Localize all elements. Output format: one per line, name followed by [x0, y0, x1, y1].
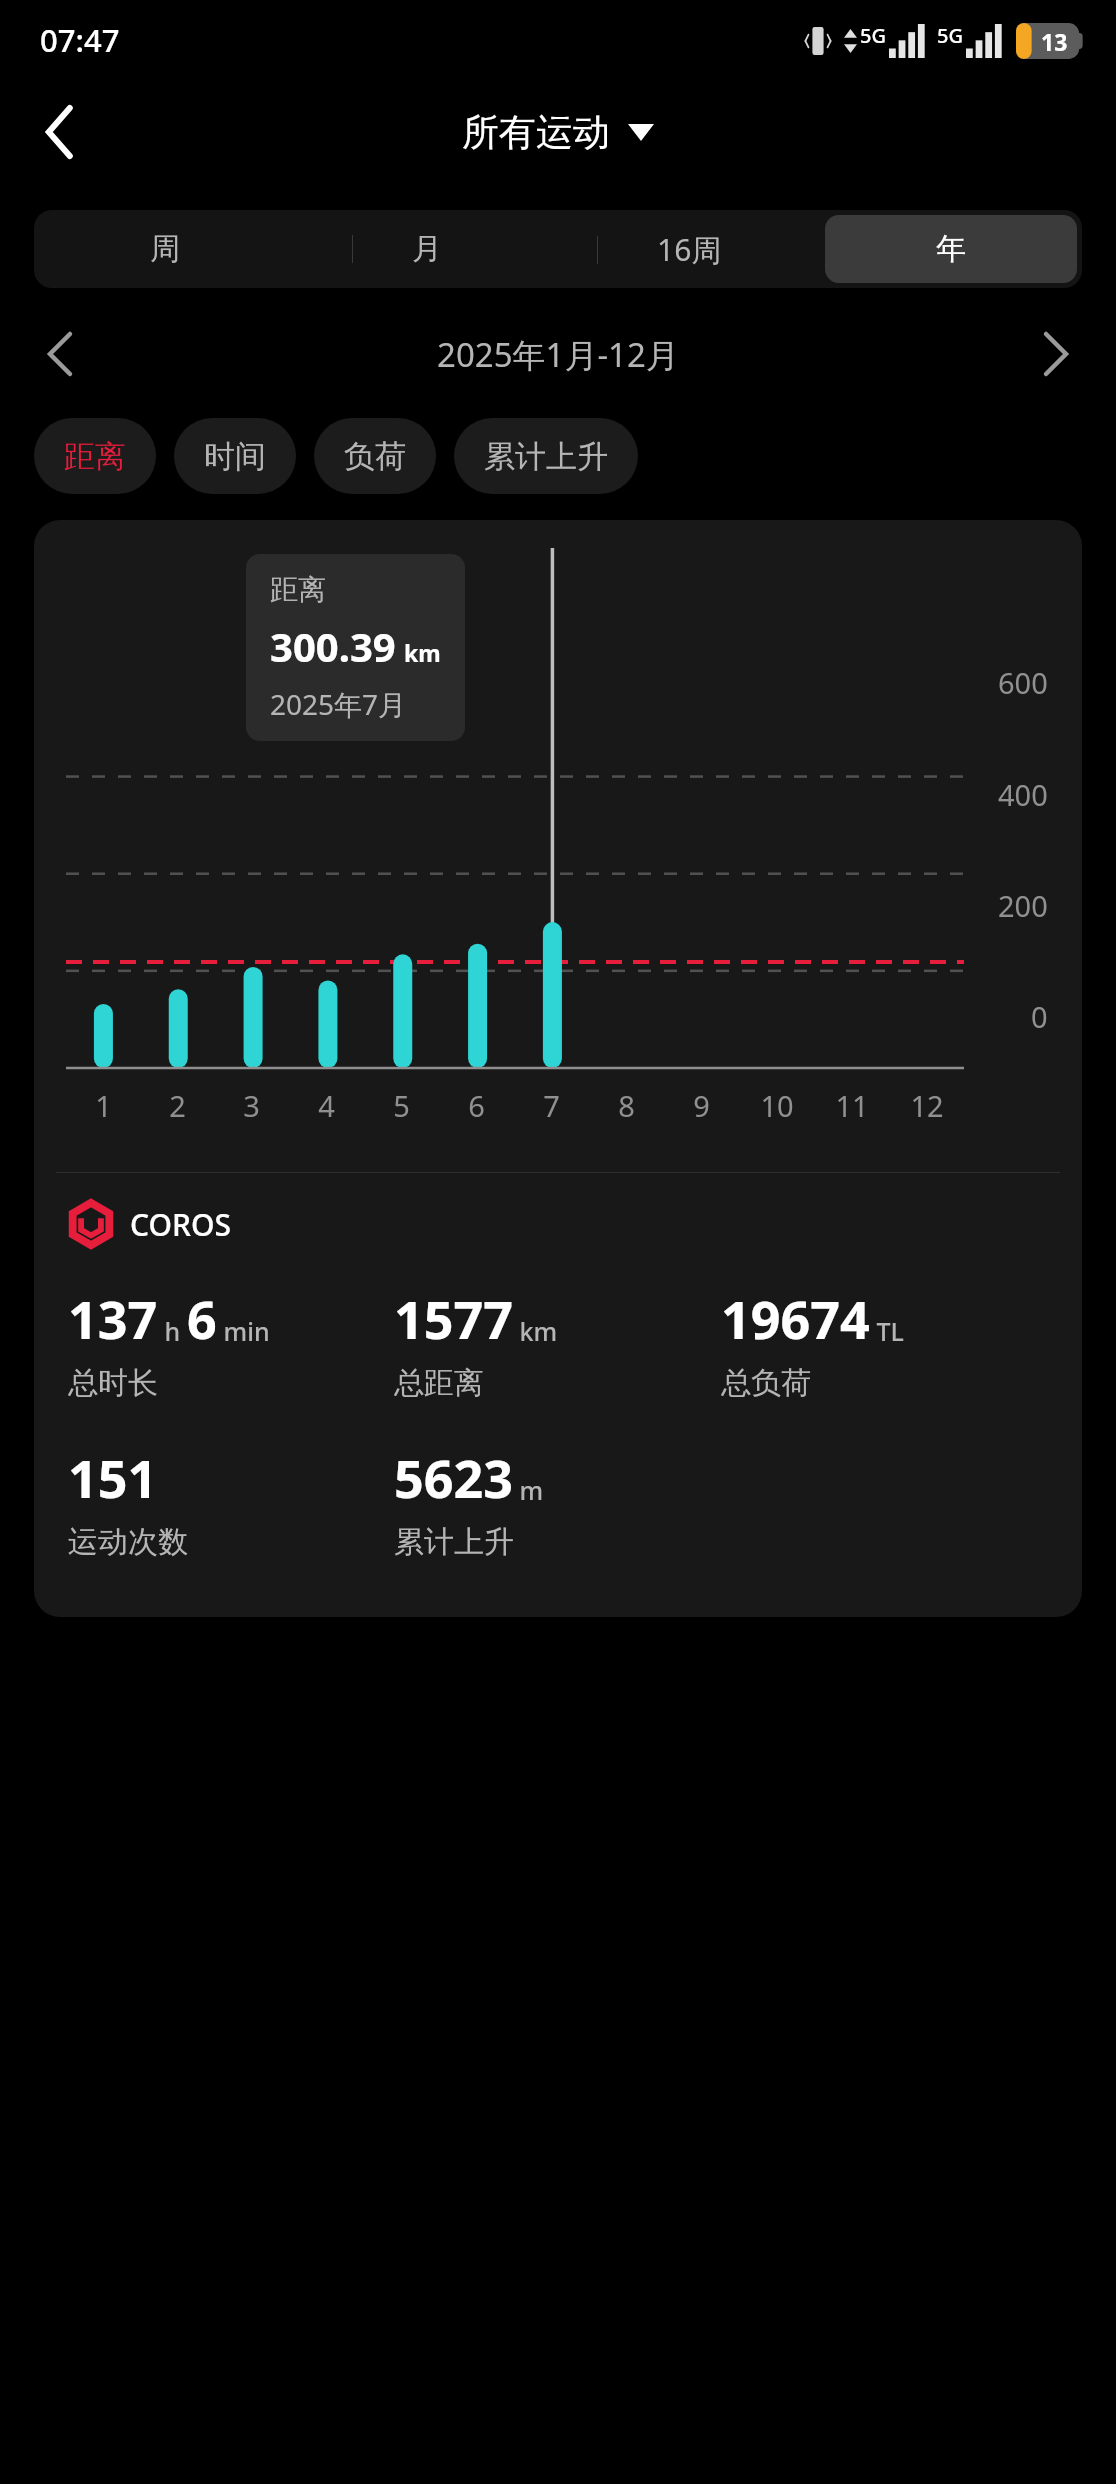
staticText: COROS — [130, 1204, 231, 1245]
staticText: 月 — [412, 230, 442, 268]
staticText: min — [217, 1314, 270, 1348]
staticText: 周 — [150, 230, 180, 268]
staticText: 2 — [169, 1086, 186, 1125]
staticText: 7 — [543, 1086, 560, 1125]
staticText: 累计上升 — [394, 1523, 514, 1561]
staticText: 时间 — [204, 437, 266, 476]
button[interactable]: 距离 — [34, 418, 156, 494]
button[interactable]: 累计上升 — [454, 418, 638, 494]
staticText: 6 — [187, 1283, 217, 1354]
staticText: 0 — [1031, 997, 1048, 1036]
staticText: 400 — [998, 775, 1048, 814]
staticText: m — [513, 1473, 544, 1507]
staticText: 5 — [393, 1086, 410, 1125]
staticText: 3 — [243, 1086, 260, 1125]
staticText: 13 — [1041, 26, 1068, 57]
staticText: 运动次数 — [68, 1523, 188, 1561]
staticText: 10 — [760, 1086, 794, 1125]
staticText: 所有运动 — [462, 109, 610, 156]
button[interactable]: 负荷 — [314, 418, 436, 494]
button[interactable]: 月 — [301, 215, 553, 283]
staticText: 600 — [998, 663, 1048, 702]
staticText: 151 — [68, 1442, 158, 1513]
staticText: 07:47 — [40, 19, 120, 61]
staticText: 4 — [318, 1086, 335, 1125]
staticText: 1577 — [394, 1283, 513, 1354]
staticText: 5G — [937, 22, 963, 49]
button[interactable]: 周 — [39, 215, 291, 283]
staticText: 5G — [860, 22, 886, 49]
staticText: 年 — [936, 230, 966, 268]
button[interactable]: 年 — [825, 215, 1077, 283]
staticText: TL — [870, 1314, 904, 1348]
staticText: 2025年7月 — [270, 685, 407, 723]
staticText: 16周 — [657, 229, 722, 270]
button[interactable]: Previous year — [30, 324, 90, 384]
button[interactable]: 所有运动 — [462, 109, 654, 156]
staticText: 300.39 — [270, 619, 396, 673]
staticText: 累计上升 — [484, 437, 608, 476]
staticText: km — [513, 1314, 558, 1348]
staticText: 6 — [468, 1086, 485, 1125]
staticText: 负荷 — [344, 437, 406, 476]
button[interactable]: Back — [22, 94, 98, 170]
staticText: km — [404, 637, 441, 668]
staticText: 距离 — [270, 572, 326, 607]
staticText: 5623 — [394, 1442, 513, 1513]
staticText: 9 — [693, 1086, 710, 1125]
staticText: 总距离 — [394, 1364, 484, 1402]
staticText: 8 — [618, 1086, 635, 1125]
staticText: 19674 — [721, 1283, 870, 1354]
button[interactable]: 时间 — [174, 418, 296, 494]
staticText: 137 — [68, 1283, 158, 1354]
staticText: h — [158, 1314, 187, 1348]
staticText: 11 — [835, 1086, 869, 1125]
staticText: 2025年1月-12月 — [437, 332, 679, 377]
staticText: 12 — [910, 1086, 944, 1125]
staticText: 1 — [95, 1086, 112, 1125]
staticText: 200 — [998, 886, 1048, 925]
button[interactable]: 16周 — [563, 215, 815, 283]
staticText: 总负荷 — [721, 1364, 811, 1402]
staticText: 总时长 — [68, 1364, 158, 1402]
staticText: 距离 — [64, 437, 126, 476]
button[interactable]: Next year — [1026, 324, 1086, 384]
